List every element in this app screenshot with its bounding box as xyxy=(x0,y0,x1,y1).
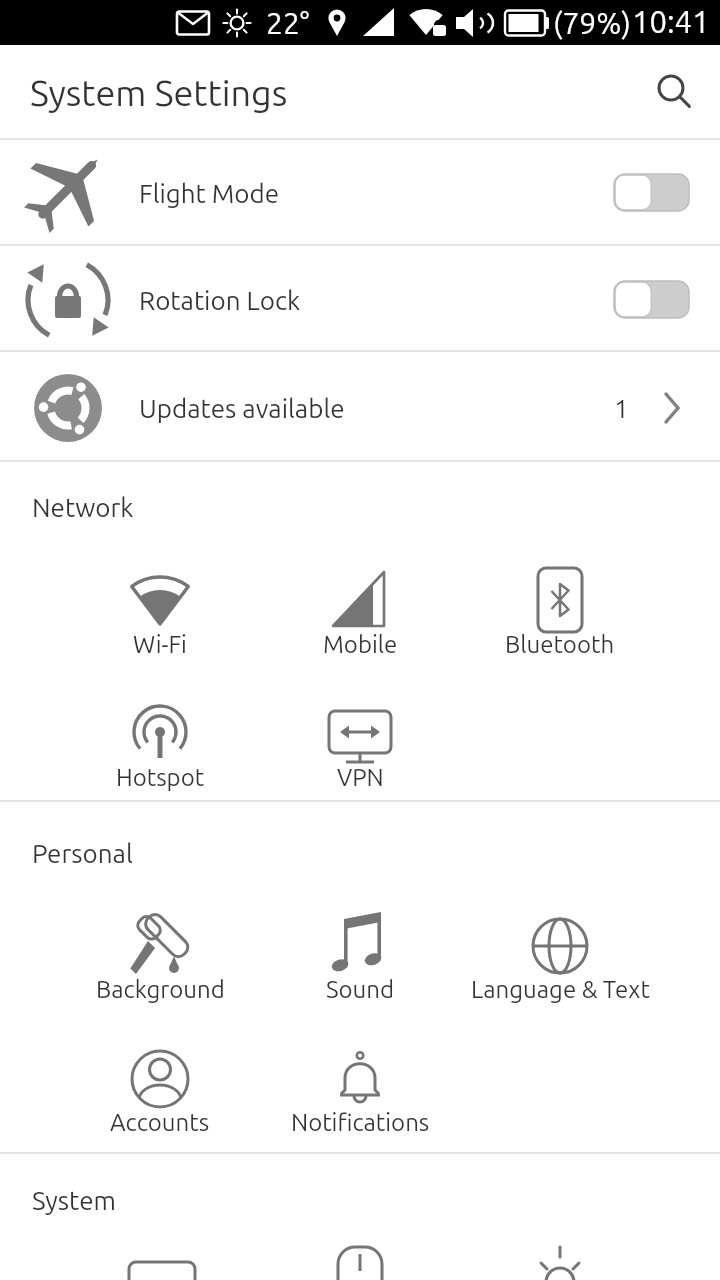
staticText: Sound xyxy=(326,976,395,1003)
staticText: Flight Mode xyxy=(139,179,280,208)
staticText: Personal xyxy=(32,839,133,868)
staticText: 1 xyxy=(614,394,629,423)
staticText: Background xyxy=(96,976,225,1003)
staticText: 22° xyxy=(266,6,310,40)
staticText: Mobile xyxy=(323,631,398,658)
staticText: Updates available xyxy=(139,394,345,423)
staticText: 10:41 xyxy=(632,4,710,39)
staticText: VPN xyxy=(337,764,384,791)
staticText: Wi-Fi xyxy=(133,631,187,658)
staticText: Accounts xyxy=(110,1109,210,1136)
staticText: System xyxy=(32,1186,117,1215)
staticText: Hotspot xyxy=(116,764,205,791)
staticText: Notifications xyxy=(291,1109,430,1136)
staticText: System Settings xyxy=(30,72,288,112)
staticText: Bluetooth xyxy=(505,631,615,658)
staticText: Language & Text xyxy=(471,976,650,1003)
staticText: (79%) xyxy=(553,6,631,40)
staticText: Network xyxy=(32,493,134,522)
staticText: Rotation Lock xyxy=(139,286,301,315)
